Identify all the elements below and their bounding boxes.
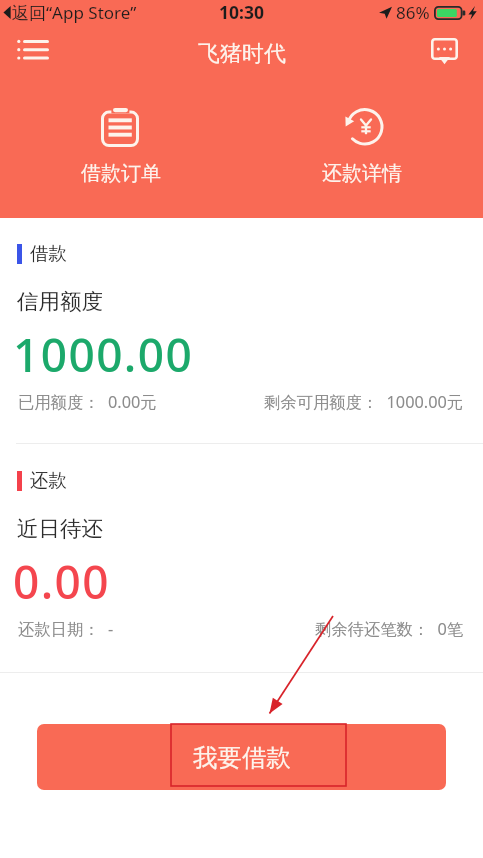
staticText: 还款详情 <box>322 161 402 186</box>
button[interactable]: Menu <box>9 33 55 67</box>
button[interactable]: 借款订单 <box>0 108 241 186</box>
staticText: 飞猪时代 <box>198 40 286 68</box>
button[interactable]: 还款详情 <box>241 108 483 186</box>
button[interactable]: Messages <box>423 30 467 70</box>
button[interactable]: 我要借款 <box>37 724 446 790</box>
staticText: 返回“App Store” <box>12 1 137 24</box>
staticText: 借款订单 <box>81 161 161 186</box>
staticText: 还款日期： - <box>18 618 114 640</box>
staticText: 1000.00 <box>13 323 194 386</box>
staticText: 借款 <box>30 242 67 265</box>
staticText: 我要借款 <box>193 742 291 773</box>
staticText: 已用额度： 0.00元 <box>18 391 157 413</box>
staticText: 0.00 <box>13 550 111 613</box>
staticText: 信用额度 <box>17 288 103 315</box>
staticText: 近日待还 <box>17 515 103 542</box>
staticText: 剩余待还笔数： 0笔 <box>315 618 464 640</box>
staticText: 86% <box>396 1 430 24</box>
staticText: 剩余可用额度： 1000.00元 <box>264 391 464 413</box>
staticText: 10:30 <box>219 0 264 24</box>
staticText: 还款 <box>30 469 67 492</box>
